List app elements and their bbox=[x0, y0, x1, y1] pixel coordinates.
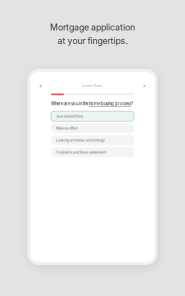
button[interactable]: Close bbox=[139, 81, 149, 91]
staticText: Where are you in the home buying process… bbox=[51, 101, 133, 106]
button[interactable]: Making offers bbox=[51, 123, 134, 133]
staticText: I signed a purchase agreement bbox=[56, 150, 106, 154]
button[interactable]: Just researching bbox=[51, 111, 134, 121]
staticText: Just researching bbox=[56, 114, 83, 118]
staticText: Making offers bbox=[56, 126, 78, 130]
staticText: at your fingertips. bbox=[57, 35, 127, 46]
button[interactable]: I signed a purchase agreement bbox=[51, 147, 134, 157]
staticText: Current Rates bbox=[82, 84, 103, 88]
button[interactable]: Looking at homes and listings bbox=[51, 135, 134, 145]
staticText: Looking at homes and listings bbox=[56, 138, 105, 142]
staticText: Mortgage application bbox=[50, 22, 135, 32]
button[interactable]: Back bbox=[35, 81, 45, 91]
